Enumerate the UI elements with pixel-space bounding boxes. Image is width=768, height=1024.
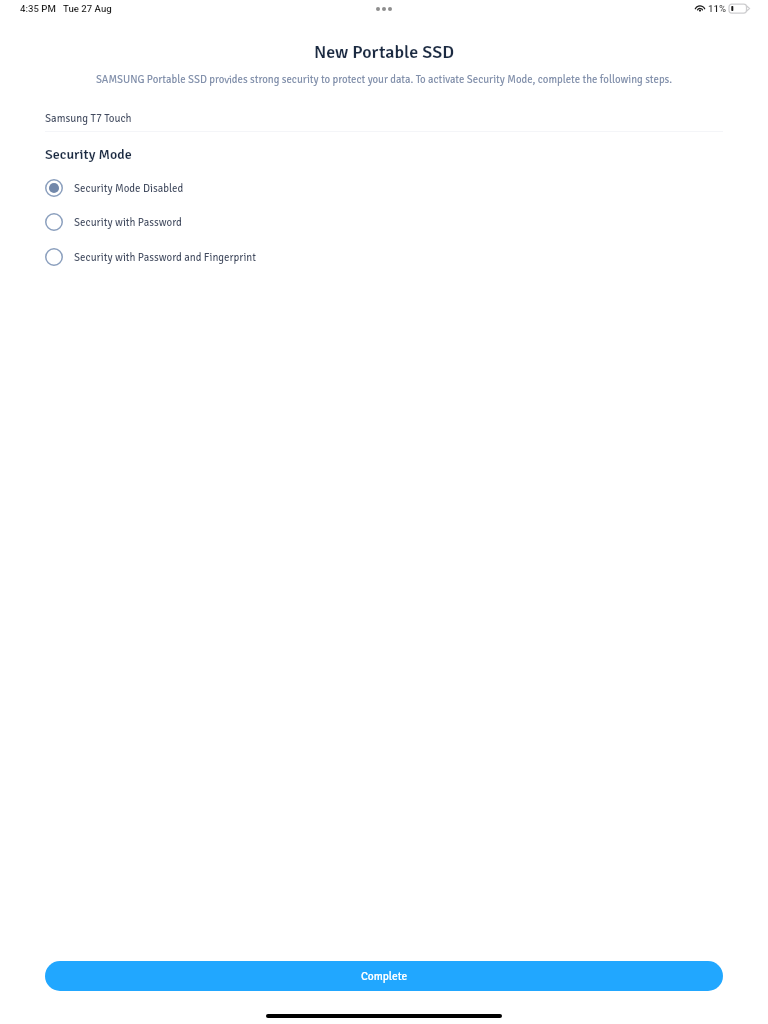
other: Wi-Fi bbox=[695, 1, 705, 15]
button[interactable]: Complete bbox=[45, 961, 723, 991]
button[interactable]: Security with Password bbox=[45, 205, 723, 239]
staticText: SAMSUNG Portable SSD provides strong sec… bbox=[0, 73, 768, 86]
other: Battery 11 percent bbox=[729, 3, 750, 14]
staticText: Security with Password bbox=[74, 216, 182, 229]
button[interactable]: Security with Password and Fingerprint bbox=[45, 240, 723, 274]
staticText: 4:35 PM bbox=[20, 3, 56, 14]
staticText: Security Mode bbox=[45, 146, 132, 163]
button[interactable]: Samsung T7 Touch bbox=[45, 104, 723, 132]
staticText: Complete bbox=[361, 969, 408, 983]
staticText: 11% bbox=[708, 3, 726, 14]
staticText: Tue 27 Aug bbox=[63, 3, 112, 14]
staticText: Samsung T7 Touch bbox=[45, 112, 132, 126]
staticText: New Portable SSD bbox=[0, 41, 768, 63]
staticText: Security Mode Disabled bbox=[74, 182, 184, 195]
button[interactable]: Security Mode Disabled bbox=[45, 171, 723, 205]
staticText: Security with Password and Fingerprint bbox=[74, 251, 257, 264]
